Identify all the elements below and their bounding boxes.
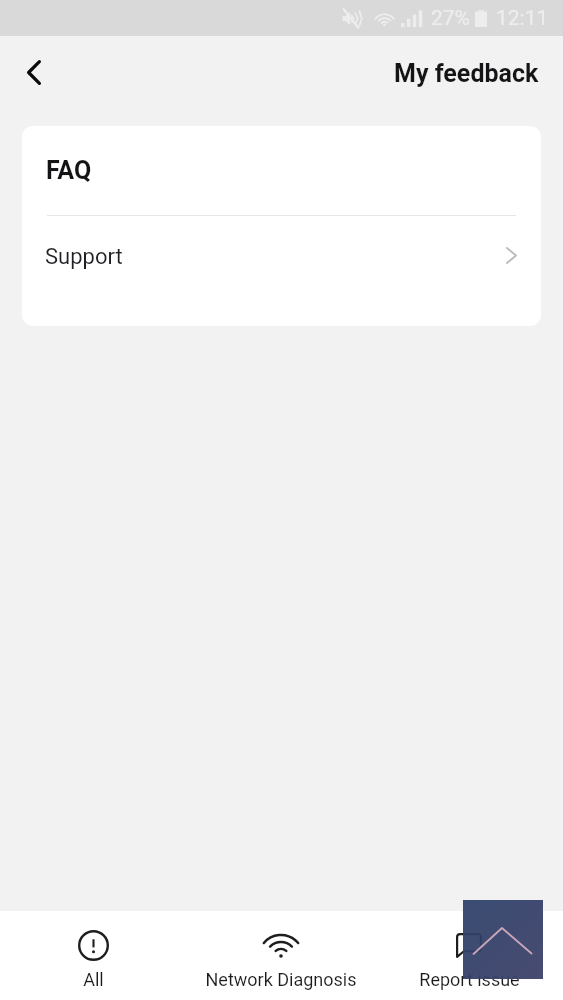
staticText: 12:11: [496, 6, 549, 31]
staticText: All: [83, 969, 104, 990]
staticText: FAQ: [46, 156, 92, 185]
staticText: 27%: [431, 6, 470, 31]
staticText: Report issue: [419, 969, 520, 990]
button[interactable]: All: [0, 911, 187, 1000]
button[interactable]: Report issue: [375, 911, 563, 1000]
button[interactable]: Back: [10, 48, 58, 96]
button[interactable]: Network Diagnosis: [187, 911, 375, 1000]
staticText: Support: [45, 244, 123, 270]
staticText: Network Diagnosis: [205, 969, 357, 990]
staticText: My feedback: [394, 59, 539, 88]
button[interactable]: Support: [22, 216, 541, 326]
